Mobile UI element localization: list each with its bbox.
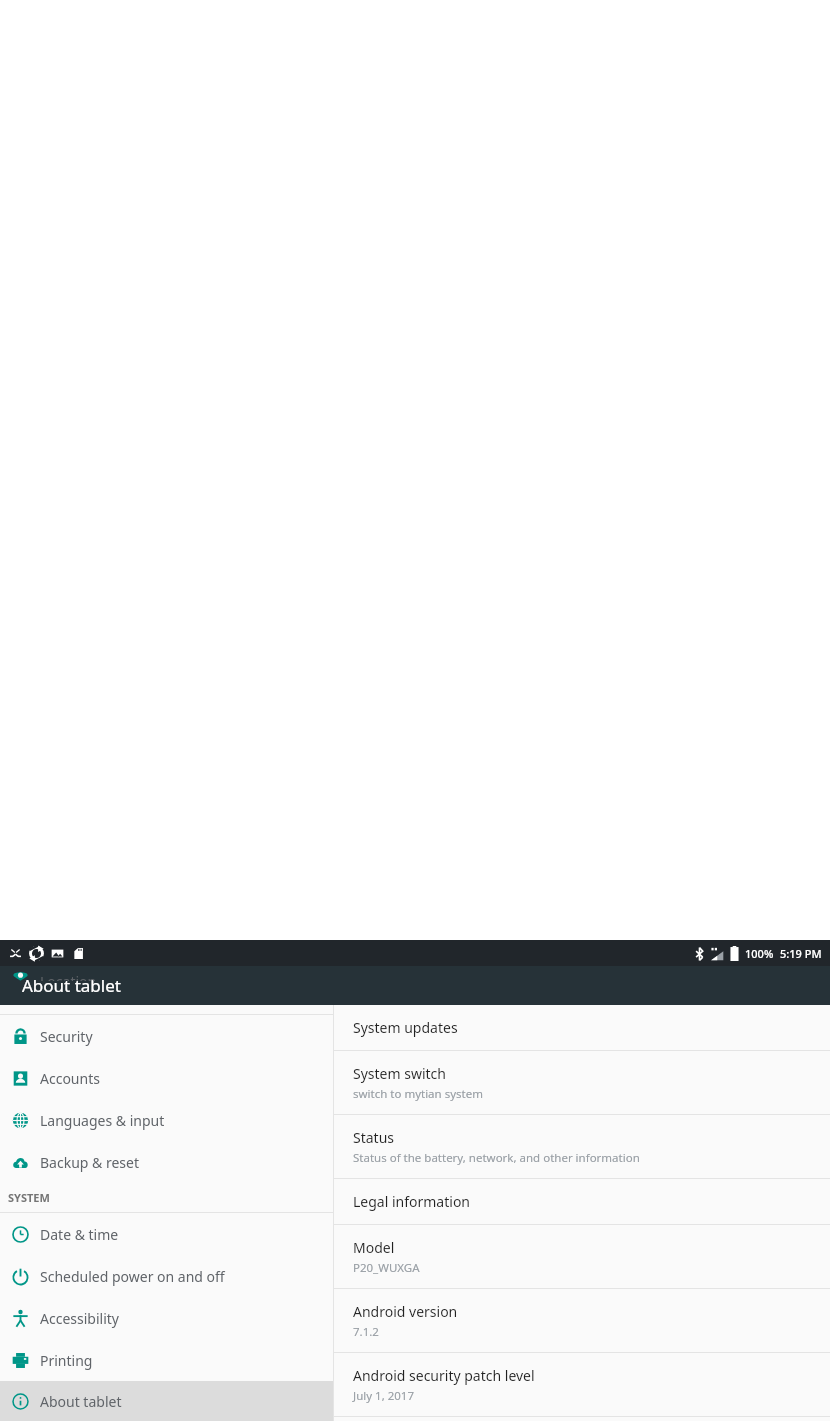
staticText: switch to mytian system [353,1086,483,1102]
staticText: Android version [353,1302,458,1321]
staticText: Accounts [40,1069,100,1088]
staticText: Legal information [353,1192,471,1211]
button[interactable]: Scheduled power on and off [0,1255,333,1297]
button[interactable]: Model [334,1225,830,1288]
staticText: 100% [745,946,774,961]
button[interactable]: Languages & input [0,1099,333,1141]
button[interactable]: System switch [334,1051,830,1114]
staticText: Accessibility [40,1309,119,1328]
staticText: Printing [40,1351,93,1370]
staticText: Android security patch level [353,1366,535,1385]
staticText: Scheduled power on and off [40,1267,225,1286]
staticText: System switch [353,1064,446,1083]
staticText: Status [353,1128,395,1147]
staticText: 5:19 PM [780,946,822,961]
staticText: July 1, 2017 [353,1388,415,1404]
staticText: Status of the battery, network, and othe… [353,1150,640,1166]
button[interactable]: System updates [334,1005,830,1050]
button[interactable]: Legal information [334,1179,830,1224]
staticText: P20_WUXGA [353,1260,420,1276]
button[interactable]: Android version [334,1289,830,1352]
staticText: 7.1.2 [353,1324,379,1340]
button[interactable]: Android security patch level [334,1353,830,1416]
staticText: Date & time [40,1225,119,1244]
button[interactable]: Accessibility [0,1297,333,1339]
button[interactable]: About tablet [0,1381,333,1421]
staticText: System updates [353,1018,458,1037]
button[interactable]: Date & time [0,1213,333,1255]
staticText: SYSTEM [8,1190,50,1205]
button[interactable]: Accounts [0,1057,333,1099]
staticText: Location [40,972,97,981]
staticText: Model [353,1238,395,1257]
staticText: About tablet [22,974,121,997]
button[interactable]: Security [0,1015,333,1057]
button[interactable]: Backup & reset [0,1141,333,1183]
staticText: Languages & input [40,1111,165,1130]
button[interactable]: Printing [0,1339,333,1381]
staticText: Security [40,1027,93,1046]
staticText: Backup & reset [40,1153,139,1172]
staticText: About tablet [40,1392,122,1411]
button[interactable]: Status [334,1115,830,1178]
